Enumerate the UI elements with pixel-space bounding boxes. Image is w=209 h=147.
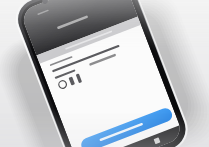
button[interactable]: Smartphone product photo — [0, 0, 209, 147]
